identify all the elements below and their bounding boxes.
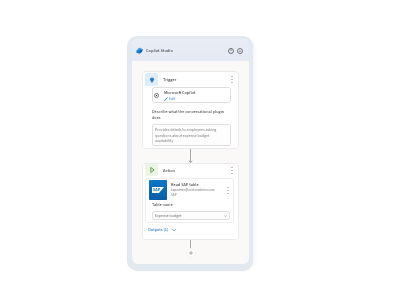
staticText: Trigger [163, 76, 177, 82]
button[interactable]: Refresh [227, 47, 234, 54]
button[interactable]: Action [142, 163, 239, 176]
staticText: SAP [171, 193, 177, 198]
button[interactable]: Provides details to employees asking que… [152, 124, 231, 146]
button[interactable]: More options [228, 74, 235, 84]
button[interactable]: More options [228, 165, 235, 175]
button[interactable]: Outputs (1) [142, 223, 179, 240]
staticText: Read SAP table [171, 182, 199, 188]
staticText: Microsoft Copilot [164, 90, 196, 96]
staticText: Copilot Studio [146, 47, 173, 53]
staticText: Describe what the conversational plugin … [152, 109, 231, 121]
button[interactable]: Expense budget [152, 211, 230, 220]
staticText: Expense budget [155, 213, 182, 219]
button[interactable]: Add a step [186, 248, 196, 258]
staticText: Table name [152, 202, 173, 208]
button[interactable]: Help [236, 47, 243, 54]
button[interactable]: More options [224, 185, 231, 195]
staticText: Action [163, 167, 176, 173]
button[interactable]: Microsoft Copilot [152, 87, 231, 103]
staticText: Edit [169, 96, 176, 101]
staticText: kapadmin@contosodemo.com [171, 188, 215, 193]
staticText: Provides details to employees asking que… [155, 127, 228, 143]
button[interactable]: SAP [145, 178, 234, 202]
staticText: Outputs (1) [148, 227, 169, 233]
button[interactable]: Trigger [142, 71, 239, 87]
staticText: SAP [153, 187, 161, 193]
